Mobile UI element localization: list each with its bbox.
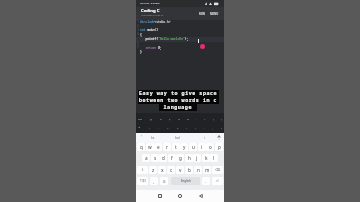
button[interactable]: * (177, 126, 179, 129)
button[interactable]: a (142, 154, 150, 162)
staticText: 6 (137, 41, 139, 45)
staticText: / (186, 126, 187, 129)
button[interactable]: hal (173, 134, 187, 142)
staticText: = (167, 126, 169, 129)
staticText: ks (151, 135, 155, 140)
staticText: x (161, 167, 164, 173)
button[interactable] (217, 135, 221, 141)
button[interactable]: \ (195, 126, 196, 129)
button[interactable]: g (176, 154, 184, 162)
button[interactable]: y (180, 143, 188, 151)
staticText: v (179, 167, 182, 173)
button[interactable]: m (203, 166, 211, 174)
button[interactable]: ⇥ (138, 126, 141, 129)
button[interactable]: k (202, 154, 210, 162)
button[interactable]: d (159, 154, 167, 162)
staticText: j (196, 155, 198, 161)
button[interactable]: i (198, 143, 206, 151)
button[interactable]: v (176, 166, 184, 174)
button[interactable]: + (204, 117, 206, 120)
staticText: g (179, 155, 182, 161)
staticText: 1 (137, 19, 139, 23)
staticText: h (188, 155, 191, 161)
staticText: hal (175, 135, 180, 140)
staticText: l (213, 155, 215, 161)
button[interactable]: / (186, 126, 187, 129)
staticText: " (149, 126, 151, 129)
button[interactable]: c (167, 166, 175, 174)
staticText: 7 (137, 45, 139, 49)
button[interactable]: ⌫ (212, 166, 223, 174)
button[interactable]: ! (221, 126, 222, 129)
staticText: % (178, 117, 181, 120)
button[interactable]: $ (169, 117, 171, 120)
staticText: MENU (210, 12, 219, 16)
staticText: u (192, 144, 195, 150)
button[interactable]: n (194, 166, 202, 174)
button[interactable]: ks (149, 134, 163, 142)
button[interactable]: English (171, 177, 200, 185)
button[interactable]: ⇧ (137, 166, 148, 174)
staticText: Tab (138, 117, 143, 120)
button[interactable]: e (154, 143, 162, 151)
staticText: $ (169, 117, 171, 120)
button[interactable]: j (193, 154, 201, 162)
staticText: o (209, 144, 212, 150)
button[interactable]: x (158, 166, 166, 174)
button[interactable]: % (178, 117, 181, 120)
button[interactable]: , (150, 177, 158, 185)
button[interactable]: b (185, 166, 193, 174)
staticText: printf("Hello world\n"); (140, 37, 189, 41)
button[interactable]: ' (158, 126, 159, 129)
button[interactable] (199, 194, 203, 198)
button[interactable]: - (196, 117, 197, 120)
button[interactable]: s (151, 154, 159, 162)
button[interactable]: Tab (138, 117, 143, 120)
button[interactable]: i (200, 134, 210, 142)
button[interactable]: ) (221, 117, 222, 120)
button[interactable]: # (160, 117, 162, 120)
button[interactable]: ⏎ (212, 177, 223, 185)
button[interactable]: w (146, 143, 154, 151)
button[interactable]: t (172, 143, 180, 151)
staticText: @ (150, 117, 153, 120)
staticText: 3 (137, 28, 139, 32)
button[interactable]: MENU (210, 12, 222, 18)
button[interactable]: p (215, 143, 223, 151)
button[interactable]: z (149, 166, 157, 174)
button[interactable]: RUN (199, 12, 208, 18)
staticText: 2 (137, 24, 139, 28)
button[interactable]: q (137, 143, 145, 151)
staticText: y (183, 144, 186, 150)
button[interactable]: o (206, 143, 214, 151)
button[interactable]: : (204, 126, 205, 129)
staticText: q (140, 144, 143, 150)
staticText: Easy way to give space (139, 90, 218, 97)
button[interactable]: & (187, 117, 189, 120)
button[interactable]: f (168, 154, 176, 162)
button[interactable]: . (202, 177, 210, 185)
button[interactable]: @ (150, 117, 153, 120)
staticText: t (175, 144, 177, 150)
button[interactable]: G (160, 177, 168, 185)
staticText: ?123 (140, 179, 146, 183)
button[interactable]: h (185, 154, 193, 162)
staticText: Coding C (141, 8, 160, 14)
button[interactable]: " (149, 126, 151, 129)
button[interactable]: u (189, 143, 197, 151)
staticText: return 0; (140, 46, 162, 50)
button[interactable]: = (167, 126, 169, 129)
staticText: k (205, 155, 208, 161)
button[interactable]: ?123 (137, 177, 148, 185)
button[interactable]: r (163, 143, 171, 151)
staticText: c (170, 167, 173, 173)
button[interactable] (178, 194, 182, 198)
button[interactable]: ( (213, 117, 214, 120)
staticText: English (181, 179, 191, 183)
button[interactable] (158, 194, 162, 198)
staticText: : (204, 126, 205, 129)
staticText: \ (195, 126, 196, 129)
button[interactable]: ; (212, 126, 213, 129)
button[interactable]: l (210, 154, 218, 162)
staticText: Auto saved at 15:22:16 (141, 14, 164, 17)
